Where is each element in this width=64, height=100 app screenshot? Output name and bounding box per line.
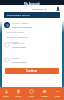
button[interactable]: My Account bbox=[0, 0, 64, 5]
button[interactable]: International bbox=[32, 7, 47, 10]
staticText: Home bbox=[3, 95, 9, 98]
button[interactable]: Country / Region bbox=[4, 21, 59, 28]
staticText: Calling From bbox=[12, 42, 25, 45]
staticText: Rates bbox=[29, 95, 34, 98]
staticText: Amount bbox=[12, 57, 20, 60]
staticText: Please select bbox=[6, 41, 19, 44]
staticText: Popular Countries bbox=[12, 25, 33, 28]
button[interactable]: Home bbox=[0, 87, 12, 100]
staticText: More bbox=[55, 95, 60, 98]
staticText: Search for Country bbox=[6, 31, 25, 34]
staticText: My Account bbox=[24, 2, 40, 6]
button[interactable]: Calling From bbox=[4, 41, 59, 48]
staticText: Please select bbox=[12, 45, 27, 48]
staticText: Country / Region bbox=[12, 22, 29, 25]
staticText: History bbox=[41, 95, 48, 98]
staticText: Destination Telephone bbox=[6, 36, 29, 39]
staticText: Continue bbox=[26, 69, 38, 73]
button[interactable]: History bbox=[38, 87, 51, 100]
button[interactable]: Account bbox=[56, 7, 60, 11]
staticText: Please select bbox=[12, 60, 27, 63]
button[interactable]: Destination Telephone bbox=[6, 36, 58, 43]
button[interactable]: Search for Country bbox=[6, 31, 58, 38]
button[interactable]: Please select bbox=[6, 41, 58, 48]
button[interactable]: More bbox=[51, 87, 64, 100]
button[interactable]: Top Up bbox=[12, 87, 25, 100]
button[interactable]: Continue bbox=[5, 68, 59, 74]
staticText: Top Up bbox=[15, 95, 22, 98]
button[interactable]: International Top Up bbox=[4, 12, 60, 18]
staticText: International Top Up bbox=[7, 14, 30, 17]
button[interactable]: Rates bbox=[25, 87, 38, 100]
button[interactable]: Amount bbox=[4, 56, 59, 63]
